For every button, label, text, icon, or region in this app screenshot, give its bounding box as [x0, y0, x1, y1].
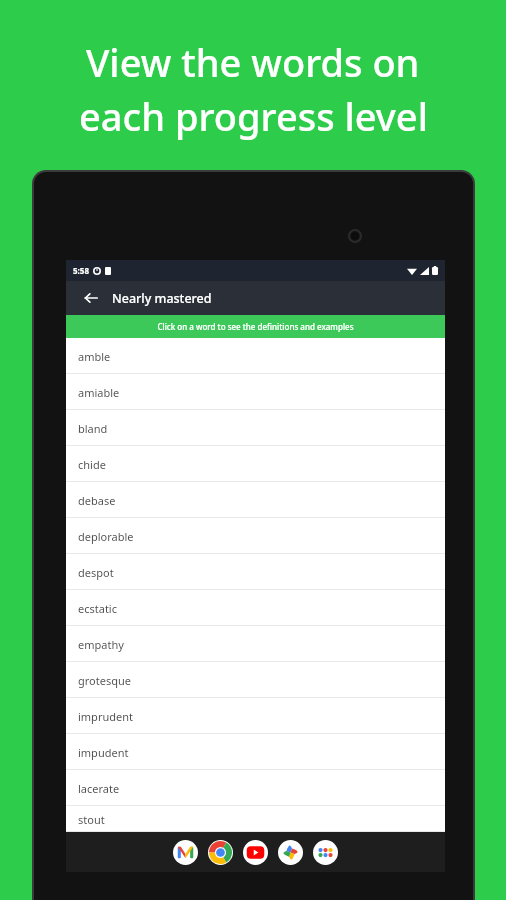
staticText: empathy	[78, 637, 124, 652]
button[interactable]: Click on a word to see the definitions a…	[66, 315, 445, 338]
staticText: despot	[78, 565, 114, 580]
button[interactable]: All apps	[313, 840, 338, 865]
staticText: imprudent	[78, 709, 133, 724]
button[interactable]: grotesque	[66, 662, 445, 698]
staticText: bland	[78, 421, 108, 436]
button[interactable]: lacerate	[66, 770, 445, 806]
button[interactable]: YouTube	[243, 840, 268, 865]
staticText: impudent	[78, 745, 129, 760]
staticText: amble	[78, 349, 111, 364]
button[interactable]: despot	[66, 554, 445, 590]
staticText: chide	[78, 457, 106, 472]
button[interactable]: stout	[66, 806, 445, 832]
staticText: Nearly mastered	[112, 290, 212, 307]
staticText: lacerate	[78, 781, 120, 796]
staticText: ecstatic	[78, 601, 117, 616]
button[interactable]: Gmail	[173, 840, 198, 865]
button[interactable]: imprudent	[66, 698, 445, 734]
staticText: View the words on	[86, 36, 420, 88]
staticText: grotesque	[78, 673, 131, 688]
button[interactable]: chide	[66, 446, 445, 482]
staticText: 5:58	[73, 265, 89, 276]
button[interactable]: bland	[66, 410, 445, 446]
staticText: stout	[78, 812, 105, 827]
staticText: amiable	[78, 385, 120, 400]
button[interactable]: amiable	[66, 374, 445, 410]
button[interactable]: debase	[66, 482, 445, 518]
staticText: deplorable	[78, 529, 134, 544]
button[interactable]: ecstatic	[66, 590, 445, 626]
button[interactable]: amble	[66, 338, 445, 374]
staticText: Click on a word to see the definitions a…	[157, 321, 354, 332]
button[interactable]: Chrome	[208, 840, 233, 865]
button[interactable]: impudent	[66, 734, 445, 770]
button[interactable]: Back	[80, 287, 102, 309]
button[interactable]: empathy	[66, 626, 445, 662]
button[interactable]: deplorable	[66, 518, 445, 554]
staticText: each progress level	[79, 90, 428, 142]
staticText: debase	[78, 493, 116, 508]
button[interactable]: Photos	[278, 840, 303, 865]
